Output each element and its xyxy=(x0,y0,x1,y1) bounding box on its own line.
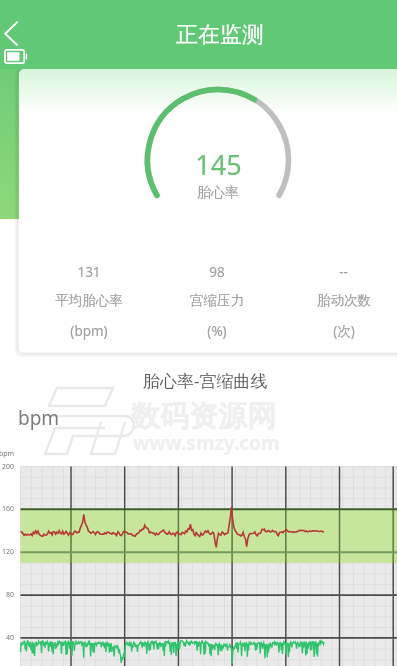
staticText: 98 xyxy=(209,263,225,281)
button[interactable]: 131 xyxy=(25,263,153,340)
staticText: (bpm) xyxy=(70,322,108,340)
staticText: 宫缩压力 xyxy=(190,292,244,309)
staticText: (%) xyxy=(207,322,227,340)
button[interactable]: Back xyxy=(0,14,34,54)
staticText: www.smzy.com xyxy=(133,430,280,456)
staticText: 平均胎心率 xyxy=(55,292,123,309)
staticText: 数码资源网 xyxy=(131,398,276,435)
staticText: 145 xyxy=(195,146,242,183)
button[interactable]: -- xyxy=(280,263,397,340)
staticText: 胎心率 xyxy=(197,184,239,202)
staticText: 胎动次数 xyxy=(317,292,371,309)
staticText: 131 xyxy=(77,263,101,281)
button[interactable]: 98 xyxy=(153,263,280,340)
staticText: bpm xyxy=(18,405,60,431)
staticText: (次) xyxy=(333,322,355,340)
staticText: 胎心率-宫缩曲线 xyxy=(143,369,268,392)
staticText: 正在监测 xyxy=(176,21,264,49)
staticText: -- xyxy=(339,263,348,281)
